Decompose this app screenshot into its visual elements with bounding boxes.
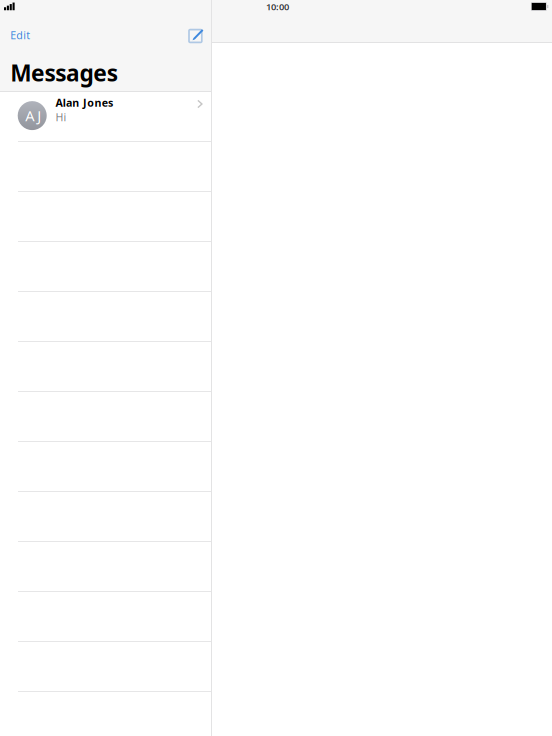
- staticText: Alan Jones: [55, 95, 113, 110]
- staticText: Messages: [10, 58, 118, 88]
- staticText: 10:00: [266, 0, 289, 13]
- button[interactable]: AJ: [0, 92, 211, 142]
- staticText: AJ: [25, 106, 41, 125]
- staticText: Hi: [55, 110, 66, 124]
- button[interactable]: New Message: [187, 28, 204, 44]
- staticText: Edit: [10, 28, 30, 42]
- button[interactable]: Edit: [10, 27, 46, 43]
